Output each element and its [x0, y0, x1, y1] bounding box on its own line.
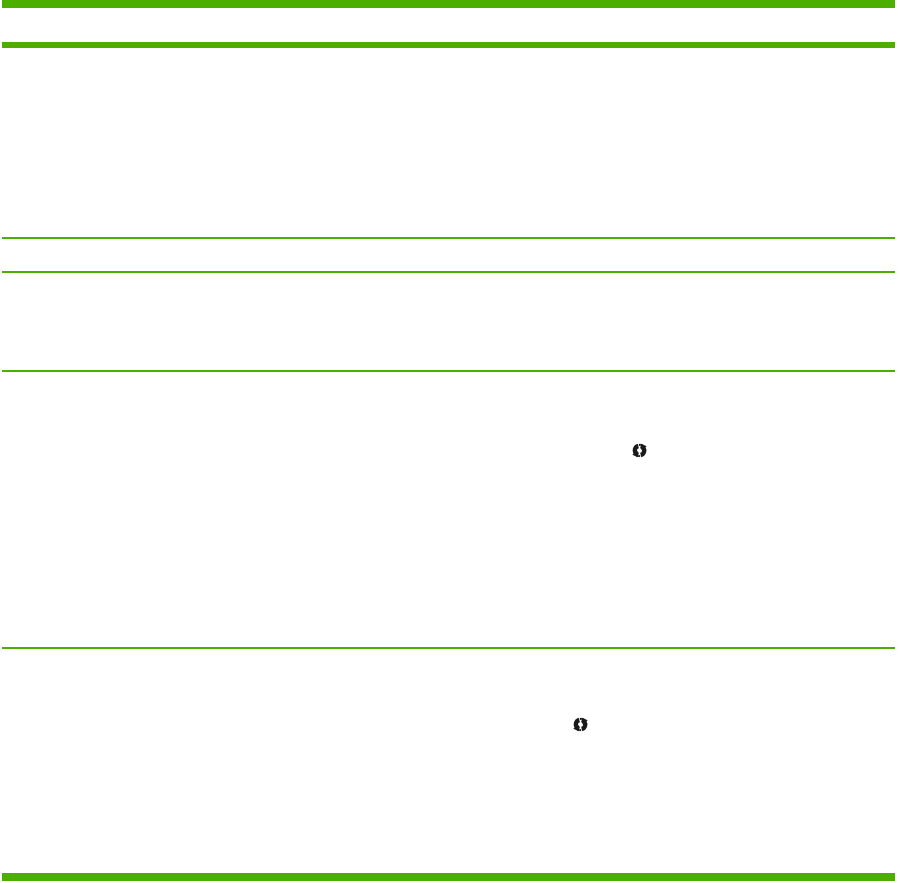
button[interactable]: Refresh — [573, 717, 588, 732]
button[interactable]: Refresh — [632, 443, 647, 458]
